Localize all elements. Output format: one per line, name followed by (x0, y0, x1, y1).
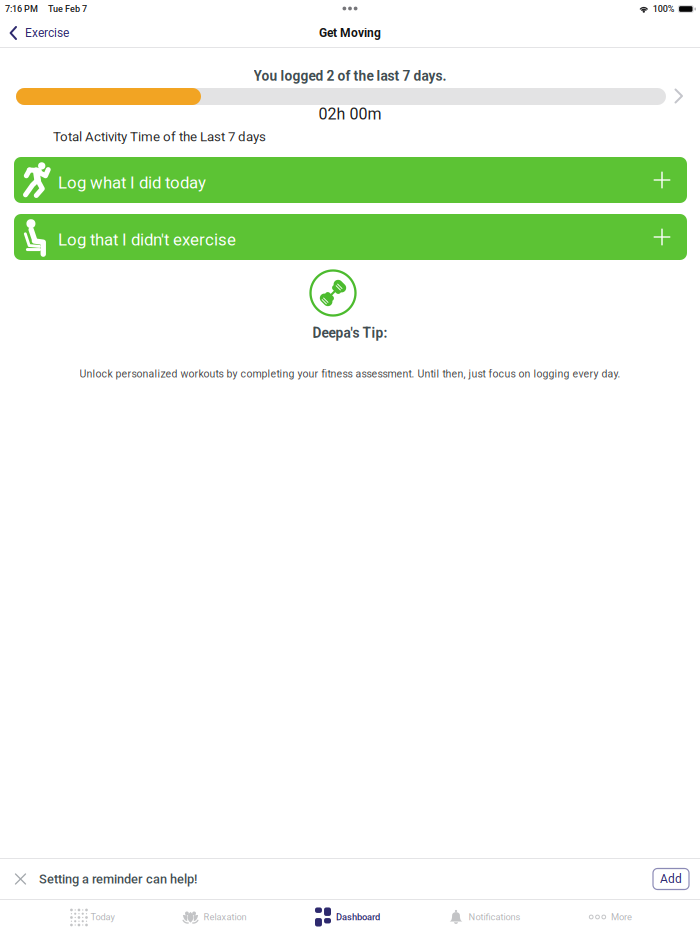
button[interactable]: More (548, 900, 673, 934)
staticText: Unlock personalized workouts by completi… (79, 368, 620, 380)
staticText: Deepa's Tip: (312, 325, 387, 341)
button[interactable]: Exercise (0, 18, 79, 48)
staticText: Add (660, 872, 682, 886)
button[interactable]: Relaxation (152, 900, 277, 934)
staticText: Notifications (468, 911, 520, 922)
staticText: You logged 2 of the last 7 days. (253, 68, 446, 84)
staticText: 7:16 PM (5, 4, 38, 14)
staticText: Relaxation (203, 911, 246, 922)
staticText: Total Activity Time of the Last 7 days (53, 129, 266, 145)
staticText: More (611, 911, 632, 922)
staticText: Get Moving (319, 26, 381, 40)
staticText: 02h 00m (318, 105, 381, 123)
button[interactable]: Log that I didn't exercise (14, 214, 687, 260)
button[interactable]: Today (30, 900, 155, 934)
button[interactable]: Dismiss (8, 866, 33, 891)
staticText: Log what I did today (58, 173, 206, 193)
staticText: Tue Feb 7 (48, 4, 87, 14)
staticText: Dashboard (336, 911, 380, 922)
button[interactable]: Log what I did today (14, 157, 687, 203)
staticText: Log that I didn't exercise (58, 230, 236, 250)
staticText: Today (90, 911, 114, 922)
staticText: Exercise (25, 26, 69, 40)
button[interactable]: Activity details (666, 83, 692, 109)
button[interactable]: Dashboard (285, 900, 410, 934)
button[interactable]: Notifications (422, 900, 547, 934)
button[interactable]: Add (653, 868, 689, 889)
staticText: 100% (653, 4, 675, 14)
staticText: Setting a reminder can help! (39, 871, 197, 886)
